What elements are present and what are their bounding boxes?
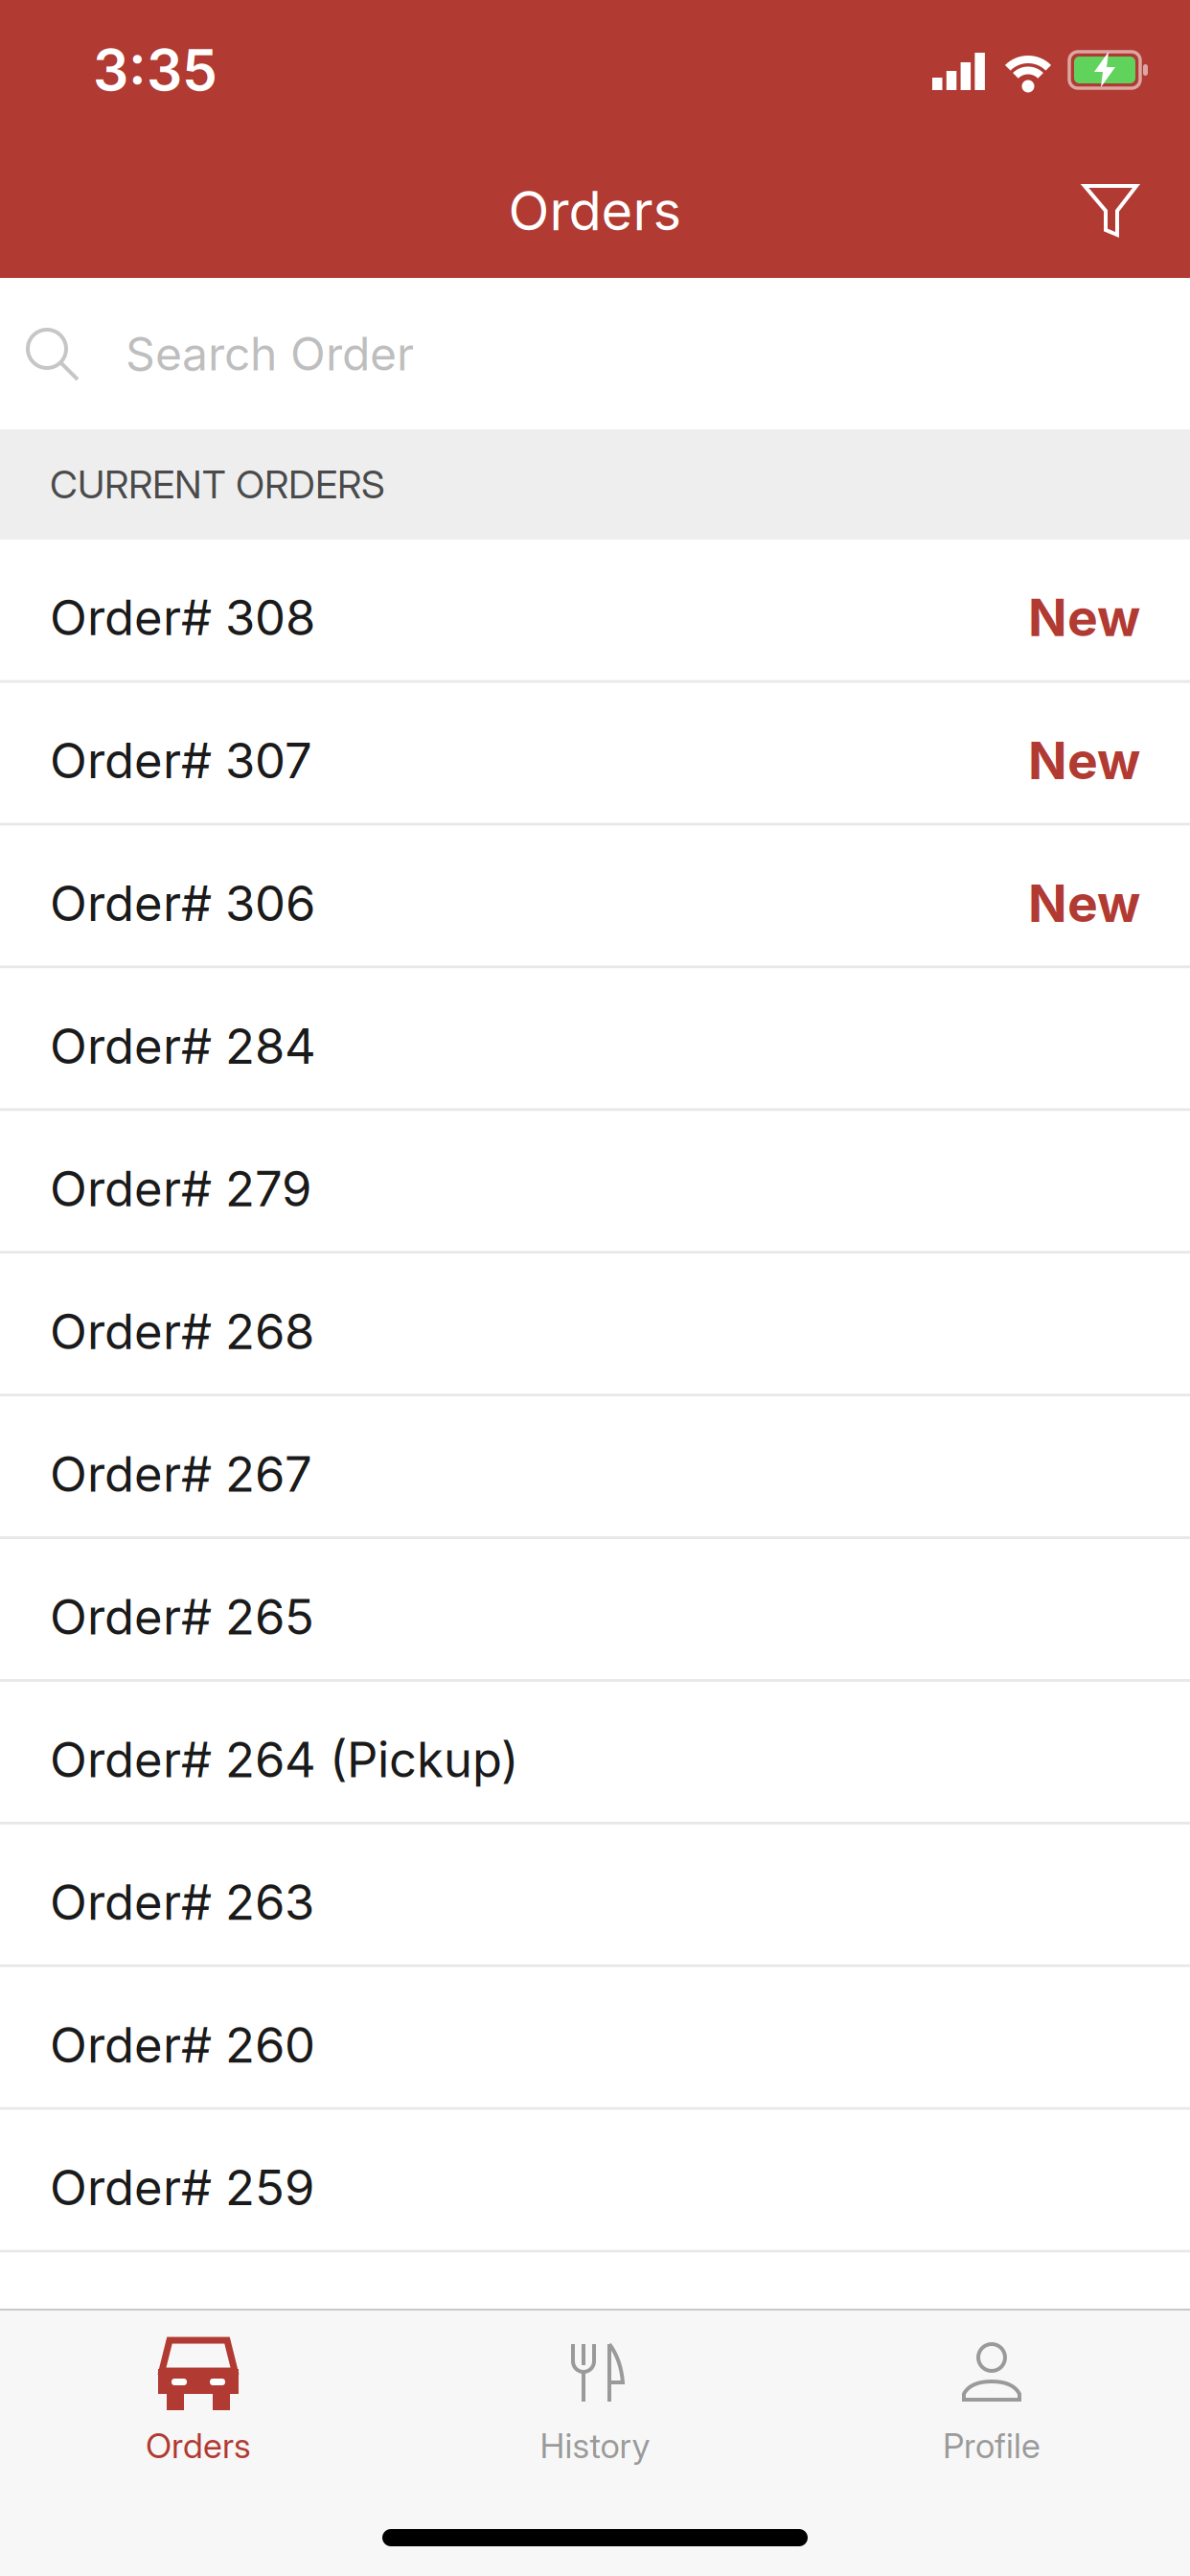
- staticText: Order# 260: [50, 2015, 315, 2074]
- staticText: History: [540, 2425, 650, 2466]
- staticText: Order# 268: [50, 1302, 314, 1361]
- staticText: Search Order: [126, 326, 414, 382]
- button[interactable]: Order# 284: [0, 968, 1190, 1111]
- button[interactable]: Order# 308: [0, 540, 1190, 683]
- button[interactable]: Order# 265: [0, 1539, 1190, 1682]
- staticText: New: [1028, 730, 1140, 791]
- staticText: Order# 308: [50, 588, 315, 647]
- button[interactable]: History: [397, 2334, 793, 2488]
- staticText: Order# 259: [50, 2158, 314, 2217]
- staticText: Order# 284: [50, 1017, 316, 1075]
- staticText: New: [1028, 872, 1140, 934]
- staticText: Order# 264 (Pickup): [50, 1730, 518, 1789]
- button[interactable]: Order# 264 (Pickup): [0, 1682, 1190, 1825]
- button[interactable]: Orders: [0, 2334, 397, 2488]
- button[interactable]: Order# 268: [0, 1254, 1190, 1396]
- button[interactable]: Filter: [1083, 182, 1140, 240]
- staticText: Order# 265: [50, 1587, 314, 1646]
- button[interactable]: Profile: [793, 2334, 1190, 2488]
- button[interactable]: Order# 306: [0, 826, 1190, 968]
- staticText: Order# 263: [50, 1873, 314, 1932]
- button[interactable]: Order# 279: [0, 1111, 1190, 1254]
- button[interactable]: Order# 267: [0, 1396, 1190, 1539]
- staticText: Order# 307: [50, 731, 312, 790]
- staticText: Order# 258: [50, 2301, 314, 2360]
- staticText: Orders: [508, 178, 682, 243]
- staticText: Order# 306: [50, 874, 315, 933]
- button[interactable]: Order# 259: [0, 2110, 1190, 2253]
- staticText: Profile: [943, 2425, 1041, 2466]
- staticText: Orders: [146, 2425, 251, 2466]
- button[interactable]: Order# 307: [0, 683, 1190, 826]
- staticText: CURRENT ORDERS: [50, 461, 385, 508]
- button[interactable]: Order# 258: [0, 2253, 1190, 2395]
- staticText: Order# 267: [50, 1445, 312, 1503]
- staticText: 3:35: [93, 36, 217, 104]
- staticText: New: [1028, 587, 1140, 648]
- button[interactable]: Order# 263: [0, 1825, 1190, 1967]
- button[interactable]: Search Order: [0, 278, 1190, 429]
- button[interactable]: Order# 260: [0, 1967, 1190, 2110]
- staticText: Order# 279: [50, 1159, 311, 1218]
